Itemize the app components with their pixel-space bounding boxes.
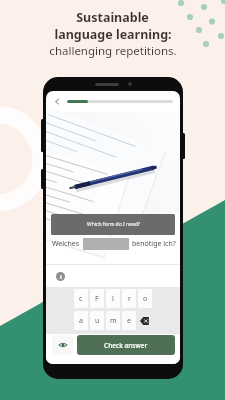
staticText: i xyxy=(60,273,62,281)
button[interactable]: a xyxy=(74,311,88,330)
staticText: Which form do I need? xyxy=(87,221,140,228)
button[interactable]: Show answer xyxy=(52,335,73,355)
button[interactable]: Check answer xyxy=(77,335,175,355)
staticText: Sustainable xyxy=(76,9,149,26)
staticText: r xyxy=(128,294,131,304)
staticText: e xyxy=(127,316,131,326)
button[interactable]: c xyxy=(74,289,88,308)
staticText: m xyxy=(110,316,117,326)
button[interactable]: r xyxy=(122,289,136,308)
button[interactable]: o xyxy=(138,289,152,308)
staticText: a xyxy=(79,316,83,326)
staticText: o xyxy=(143,294,148,304)
staticText: language learning: xyxy=(54,26,172,43)
staticText: Welches xyxy=(52,239,80,249)
staticText: l xyxy=(112,294,114,304)
button[interactable] xyxy=(138,311,152,330)
button[interactable]: m xyxy=(106,311,120,330)
button[interactable]: l xyxy=(106,289,120,308)
staticText: benötige ich? xyxy=(132,239,176,249)
staticText: challenging repetitions. xyxy=(49,43,177,59)
button[interactable]: e xyxy=(122,311,136,330)
button[interactable]: F xyxy=(90,289,104,308)
staticText: u xyxy=(95,316,100,326)
staticText: Check answer xyxy=(104,341,148,350)
staticText: c xyxy=(79,294,83,304)
button[interactable]: u xyxy=(90,311,104,330)
button[interactable]: Back xyxy=(51,95,64,108)
button[interactable]: Hint xyxy=(56,272,65,281)
staticText: F xyxy=(95,294,99,304)
